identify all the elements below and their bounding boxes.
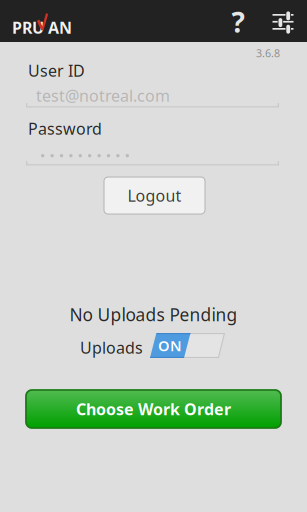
staticText: Choose Work Order xyxy=(76,398,231,420)
staticText: ON xyxy=(158,336,182,355)
staticText: No Uploads Pending xyxy=(69,303,237,326)
button[interactable]: Settings xyxy=(261,0,305,42)
button[interactable]: Help xyxy=(215,0,261,42)
staticText: 3.6.8 xyxy=(256,46,280,60)
staticText: Uploads xyxy=(80,337,143,358)
staticText: Password xyxy=(28,118,102,139)
button[interactable]: Choose Work Order xyxy=(26,390,281,428)
button[interactable]: Uploads toggle xyxy=(150,333,225,358)
staticText: PRU xyxy=(12,17,44,38)
button[interactable]: Logout xyxy=(104,177,205,214)
staticText: test@notreal.com xyxy=(36,85,170,106)
staticText: ? xyxy=(231,3,244,41)
staticText: Logout xyxy=(127,185,181,206)
staticText: AN xyxy=(48,17,72,38)
staticText: User ID xyxy=(28,60,85,81)
